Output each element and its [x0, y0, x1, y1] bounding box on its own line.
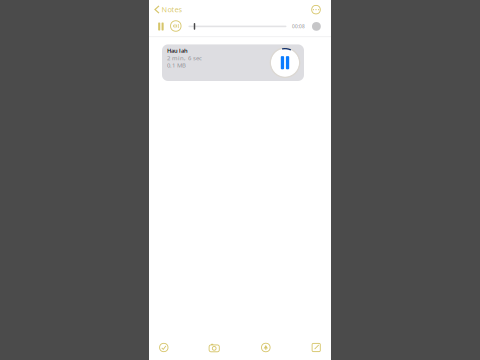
staticText: Hau lah: [167, 47, 188, 54]
button[interactable]: Hau lah: [162, 44, 304, 81]
staticText: 2 min, 6 sec: [167, 54, 202, 62]
button[interactable]: Notes: [149, 0, 183, 18]
button[interactable]: Markup: [254, 335, 278, 359]
button[interactable]: Camera: [202, 335, 226, 359]
button[interactable]: Close: [309, 19, 323, 34]
staticText: 00:08: [292, 23, 305, 30]
button[interactable]: Pause: [154, 19, 168, 34]
button[interactable]: Checklist: [152, 335, 176, 359]
staticText: Notes: [162, 4, 183, 14]
button[interactable]: More: [308, 2, 324, 18]
staticText: 0.1 MB: [167, 61, 186, 69]
button[interactable]: Audio: [169, 18, 183, 33]
button[interactable]: New Note: [304, 335, 328, 359]
